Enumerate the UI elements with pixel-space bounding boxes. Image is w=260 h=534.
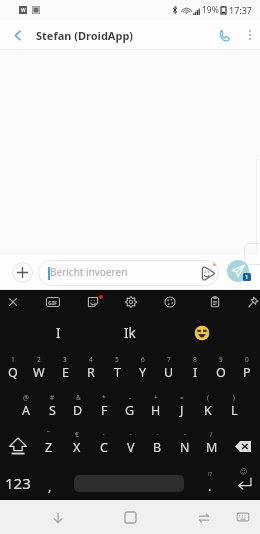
staticText: O [216,364,226,381]
button[interactable]: Home [114,501,147,534]
staticText: + [154,393,158,402]
staticText: W [33,364,45,381]
staticText: . [208,477,212,495]
staticText: F [101,402,108,419]
staticText: 1 [245,273,249,281]
button[interactable]: 7 [156,352,182,390]
button[interactable]: !? [192,465,228,500]
button[interactable]: Clipboard [202,290,228,314]
button[interactable]: Close [0,290,26,314]
button[interactable]: GIF [40,290,66,314]
button[interactable]: Send [227,260,249,282]
staticText: ¯ [47,430,51,439]
staticText: M [206,439,218,456]
staticText: B [153,439,162,456]
staticText: / [210,430,213,439]
staticText: !? [208,470,213,478]
button[interactable]: 3 [52,352,78,390]
button[interactable]: ) [221,390,247,428]
button[interactable]: = [169,390,195,428]
staticText: - [129,393,132,402]
staticText: D [73,402,83,419]
button[interactable]: · [171,428,198,465]
button[interactable]: & [65,390,91,428]
button[interactable]: Hide keyboard [41,501,74,534]
staticText: 1 [11,355,15,364]
staticText: 8 [193,355,197,364]
button[interactable]: 123 [1,465,34,500]
staticText: J [180,402,184,419]
staticText: H [151,402,161,419]
staticText: E [62,364,69,381]
staticText: N [180,439,190,456]
button[interactable]: / [198,428,225,465]
button[interactable]: ( [195,390,221,428]
button[interactable]: 6 [130,352,156,390]
button[interactable]: 9 [208,352,234,390]
button[interactable]: Backspace [225,428,260,465]
staticText: # [50,393,55,402]
staticText: I [56,324,61,342]
button[interactable]: Space [74,475,184,492]
staticText: 19% [202,4,219,16]
button[interactable]: 0 [234,352,260,390]
staticText: ☺ [240,468,248,476]
button[interactable]: * [91,390,117,428]
button[interactable]: · [90,428,117,465]
button[interactable]: # [39,390,65,428]
button[interactable]: Pin [240,290,260,314]
button[interactable]: Add attachment [12,262,33,283]
button[interactable]: Themes [157,290,183,314]
button[interactable]: 8 [182,352,208,390]
staticText: R [87,364,95,381]
staticText: 2 [37,355,41,364]
staticText: 6 [141,355,145,364]
button[interactable]: Shift [0,428,35,465]
staticText: X [73,439,81,456]
button[interactable]: Call [209,20,239,50]
button[interactable]: € [63,428,90,465]
staticText: * [102,393,106,402]
staticText: · [157,430,159,439]
button[interactable]: 1 [0,352,26,390]
button[interactable]: Back [0,20,34,50]
button[interactable]: Bericht invoeren [38,260,219,286]
button[interactable]: - [117,390,143,428]
staticText: A [22,402,30,419]
staticText: Stefan (DroidApp) [36,28,134,43]
button[interactable]: More options [239,20,260,50]
button[interactable]: I [22,314,94,352]
staticText: 0 [245,355,249,364]
staticText: T [114,364,121,381]
staticText: · [103,430,105,439]
button[interactable]: Stickers [80,290,106,314]
button[interactable]: 4 [78,352,104,390]
button[interactable]: Stickers [199,265,216,282]
button[interactable]: Settings [118,290,144,314]
staticText: 5 [115,355,119,364]
staticText: L [231,402,238,419]
button[interactable] [166,314,238,352]
button[interactable]: + [143,390,169,428]
staticText: 9 [219,355,223,364]
staticText: U [164,364,174,381]
staticText: C [100,439,108,456]
button[interactable]: Enter [228,465,260,500]
button[interactable]: 5 [104,352,130,390]
button[interactable]: Recents [187,501,220,534]
button[interactable]: · [117,428,144,465]
button[interactable]: ¯ [35,428,63,465]
staticText: Ik [124,324,136,342]
staticText: Y [139,364,147,381]
staticText: GIF [48,299,58,306]
button[interactable]: @ [13,390,39,428]
button[interactable]: 2 [26,352,52,390]
button[interactable]: Keyboard [227,501,259,533]
staticText: , [48,477,52,495]
staticText: & [76,393,81,402]
staticText: € [75,430,79,439]
button[interactable]: , [36,465,64,500]
button[interactable]: · [144,428,171,465]
button[interactable]: Ik [94,314,166,352]
staticText: S [49,402,56,419]
